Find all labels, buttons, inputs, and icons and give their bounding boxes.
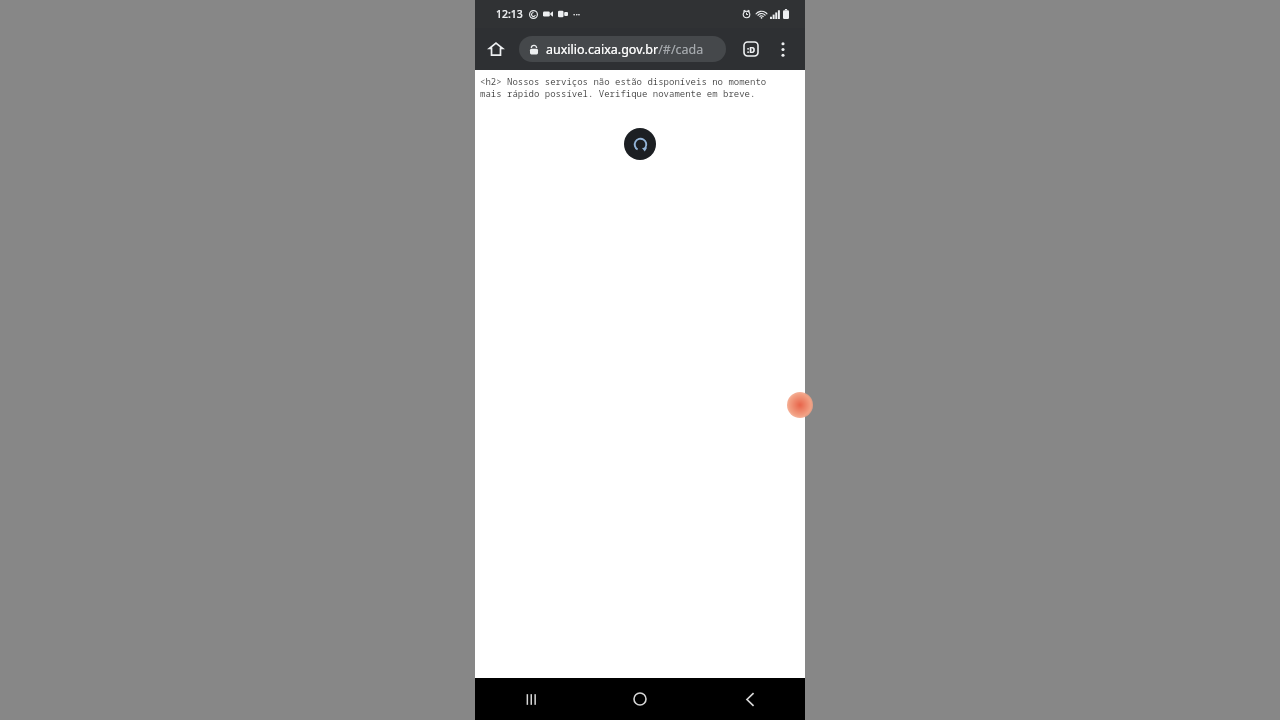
button[interactable]: Recent apps: [475, 678, 585, 720]
button[interactable]: Tabs: [737, 35, 765, 63]
button[interactable]: More options: [769, 35, 797, 63]
staticText: 12:13: [496, 7, 523, 21]
button[interactable]: Home: [585, 678, 695, 720]
button[interactable]: Back: [695, 678, 805, 720]
button[interactable]: auxilio.caixa.gov.br/#/cada: [519, 36, 726, 62]
staticText: ···: [573, 8, 581, 20]
staticText: mais rápido possível. Verifique novament…: [480, 87, 756, 99]
staticText: auxilio.caixa.gov.br/#/cada: [546, 41, 704, 58]
staticText: :D: [747, 44, 756, 55]
button[interactable]: Reload: [624, 128, 656, 160]
staticText: <h2> Nossos serviços não estão disponíve…: [480, 75, 767, 87]
button[interactable]: Home: [482, 35, 510, 63]
